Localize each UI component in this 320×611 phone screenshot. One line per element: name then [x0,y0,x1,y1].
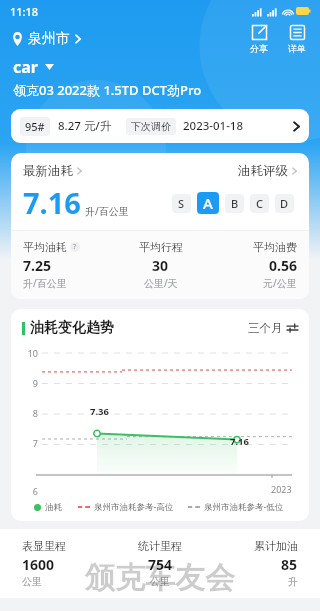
staticText: 下次调价 [131,120,171,133]
staticText: 754 [148,555,173,574]
staticText: 最新油耗 [23,163,73,179]
button[interactable]: 最新油耗 [23,163,82,179]
staticText: 30 [152,256,169,275]
staticText: 2023-01-18 [183,118,244,134]
staticText: 11:18 [10,4,39,19]
staticText: 7 [32,437,38,449]
staticText: D [280,196,289,211]
button[interactable]: A [197,192,219,214]
staticText: 85 [281,555,298,574]
staticText: 7.16 [230,435,249,448]
staticText: 0.56 [269,256,297,275]
button[interactable]: C [250,194,269,213]
staticText: 颁克车友会 [85,559,235,597]
staticText: 7.16 [23,183,81,222]
staticText: 表显里程 [22,539,66,553]
staticText: 8.27 元/升 [58,118,112,134]
staticText: 平均行程 [139,240,183,254]
button[interactable]: 分享 [248,24,270,54]
staticText: B [231,196,239,211]
staticText: 油耗变化趋势 [30,319,114,337]
staticText: 详单 [288,43,306,54]
staticText: 1600 [22,555,55,574]
button[interactable]: D [275,194,294,213]
staticText: A [203,193,213,213]
button[interactable]: S [172,194,191,213]
button[interactable]: B [225,194,244,213]
staticText: 领克03 2022款 1.5TD DCT劲Pro [13,81,202,99]
staticText: S [178,196,185,211]
staticText: ? [73,242,77,252]
button[interactable]: car [13,56,307,99]
staticText: 升 [288,575,298,588]
staticText: 公里/天 [144,276,178,290]
staticText: 三个月 [248,321,283,335]
staticText: 95# [25,119,45,134]
staticText: 泉州市 [28,30,70,48]
staticText: 油耗评级 [238,163,288,179]
staticText: 2023 [271,483,292,495]
staticText: 公里 [150,575,170,588]
staticText: 9 [32,377,38,389]
staticText: 累计加油 [254,539,298,553]
staticText: 平均油费 [253,240,297,254]
staticText: car [13,56,38,78]
staticText: 7.36 [90,405,109,418]
button[interactable]: 油耗评级 [238,163,297,179]
staticText: 10 [27,347,38,359]
staticText: 元/公里 [263,276,297,290]
staticText: 分享 [250,43,268,54]
staticText: 统计里程 [138,539,182,553]
button[interactable]: 详单 [286,24,308,54]
staticText: 平均油耗 [23,240,67,254]
staticText: 6 [32,485,38,497]
staticText: 泉州市油耗参考-高位 [94,501,174,513]
staticText: 升/百公里 [85,204,129,218]
staticText: 8 [32,407,38,419]
staticText: 公里 [22,575,42,588]
staticText: 泉州市油耗参考-低位 [204,501,284,513]
button[interactable]: 泉州市 [12,26,81,52]
button[interactable]: 切换周期 [248,321,298,335]
staticText: C [256,196,263,211]
staticText: 油耗 [45,502,62,513]
staticText: 升/百公里 [23,276,67,290]
button[interactable]: 95# [11,109,309,143]
staticText: 7.25 [23,256,51,275]
